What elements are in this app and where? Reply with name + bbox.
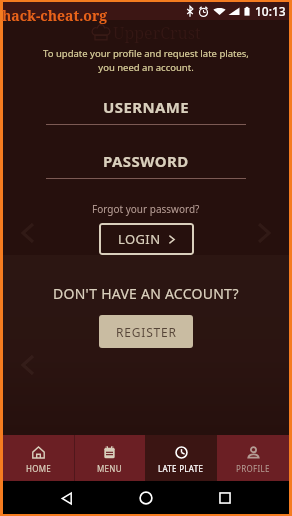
button[interactable]: PASSWORD — [46, 151, 246, 179]
button[interactable]: Home — [131, 483, 161, 513]
button[interactable]: Back — [52, 483, 82, 513]
button[interactable]: LOGIN — [99, 223, 194, 255]
staticText: 10:13 — [255, 3, 286, 19]
staticText: LOGIN — [118, 230, 161, 248]
staticText: HOME — [26, 463, 52, 474]
button[interactable]: USERNAME — [46, 97, 246, 125]
button[interactable]: MENU — [74, 435, 145, 481]
staticText: LATE PLATE — [158, 463, 204, 474]
staticText: USERNAME — [103, 97, 190, 117]
button[interactable]: REGISTER — [99, 315, 193, 348]
button[interactable]: HOME — [3, 435, 74, 481]
button[interactable]: Forgot your password? — [88, 201, 204, 217]
button[interactable]: PROFILE — [217, 435, 289, 481]
staticText: MENU — [97, 463, 122, 474]
button[interactable]: LATE PLATE — [145, 435, 217, 481]
staticText: To update your profile and request late … — [3, 47, 289, 74]
staticText: DON'T HAVE AN ACCOUNT? — [53, 284, 239, 303]
staticText: PASSWORD — [103, 151, 189, 171]
button[interactable]: Recent apps — [210, 483, 240, 513]
staticText: PROFILE — [236, 463, 270, 474]
staticText: hack-cheat.org — [2, 6, 108, 25]
staticText: REGISTER — [116, 324, 177, 340]
staticText: UpperCrust — [113, 22, 201, 44]
